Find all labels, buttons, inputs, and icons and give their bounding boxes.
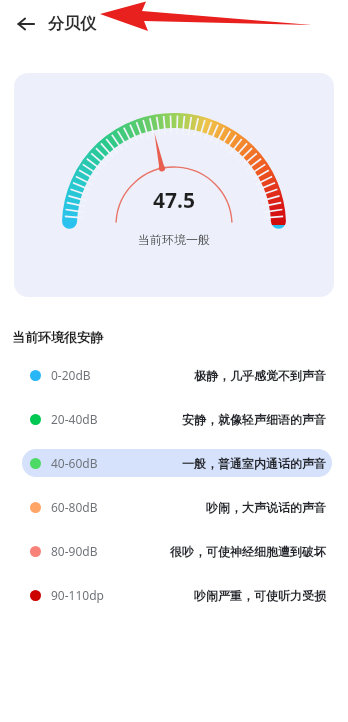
- staticText: 60-80dB: [51, 499, 98, 515]
- staticText: 当前环境很安静: [12, 329, 103, 345]
- staticText: 吵闹，大声说话的声音: [206, 500, 326, 515]
- staticText: 当前环境一般: [138, 232, 210, 247]
- staticText: 很吵，可使神经细胞遭到破坏: [170, 544, 326, 559]
- button[interactable]: 60-80dB: [22, 493, 332, 521]
- staticText: 40-60dB: [51, 455, 98, 471]
- button[interactable]: 0-20dB: [22, 361, 332, 389]
- staticText: 80-90dB: [51, 543, 98, 559]
- staticText: 90-110dp: [51, 587, 104, 603]
- staticText: 吵闹严重，可使听力受损: [194, 588, 326, 603]
- staticText: 极静，几乎感觉不到声音: [194, 368, 326, 383]
- button[interactable]: 90-110dp: [22, 581, 332, 609]
- staticText: 20-40dB: [51, 411, 98, 427]
- button[interactable]: 20-40dB: [22, 405, 332, 433]
- staticText: 0-20dB: [51, 367, 91, 383]
- button[interactable]: 40-60dB: [22, 449, 332, 477]
- staticText: 一般，普通室内通话的声音: [182, 456, 326, 471]
- staticText: 分贝仪: [48, 14, 96, 34]
- button[interactable]: Back: [12, 10, 40, 38]
- staticText: 安静，就像轻声细语的声音: [182, 412, 326, 427]
- button[interactable]: 80-90dB: [22, 537, 332, 565]
- staticText: 47.5: [153, 186, 195, 215]
